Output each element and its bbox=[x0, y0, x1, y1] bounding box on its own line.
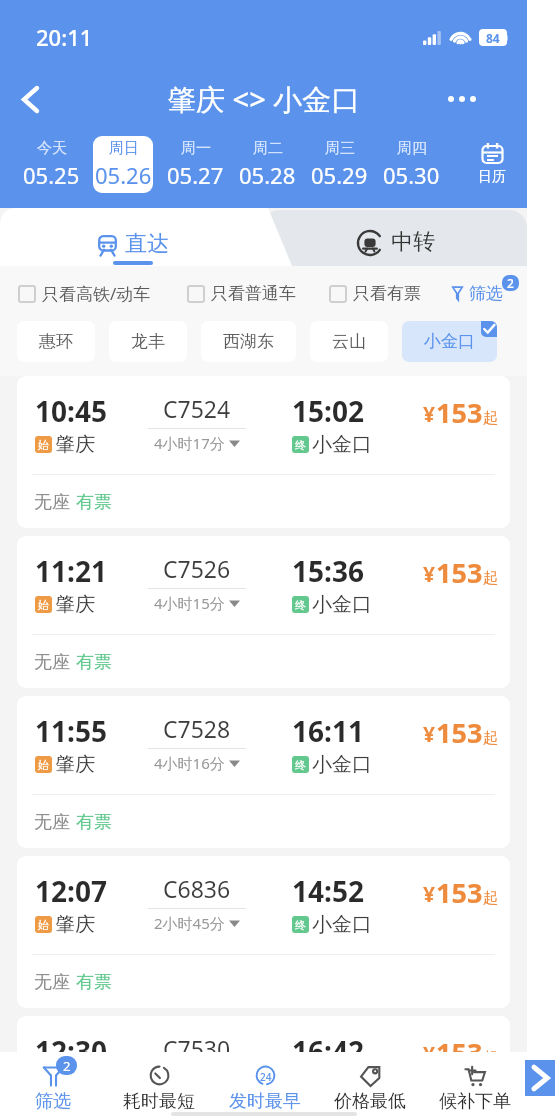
staticText: 153 bbox=[436, 554, 483, 591]
button[interactable]: 周一 bbox=[165, 136, 225, 193]
staticText: ¥ bbox=[423, 720, 436, 749]
staticText: 10:45 bbox=[35, 392, 107, 430]
staticText: 20:11 bbox=[36, 22, 93, 52]
staticText: 有票 bbox=[76, 491, 112, 514]
staticText: 候补下单 bbox=[439, 1090, 511, 1113]
button[interactable]: Back bbox=[0, 72, 60, 126]
staticText: 11:21 bbox=[35, 552, 107, 590]
button[interactable]: 周日 bbox=[93, 136, 153, 193]
staticText: 周一 bbox=[181, 139, 211, 158]
staticText: ¥ bbox=[423, 560, 436, 589]
button[interactable]: More options bbox=[439, 76, 485, 122]
staticText: 始 bbox=[38, 918, 49, 932]
staticText: 84 bbox=[486, 30, 500, 46]
staticText: 日历 bbox=[478, 168, 506, 186]
staticText: 有票 bbox=[76, 811, 112, 834]
staticText: 肇庆 <> 小金口 bbox=[167, 79, 361, 119]
button[interactable]: 耗时最短 bbox=[106, 1052, 212, 1120]
button[interactable]: 今天 bbox=[21, 136, 81, 193]
staticText: 16:42 bbox=[292, 1032, 364, 1070]
staticText: C7526 bbox=[163, 553, 231, 584]
button[interactable]: 小金口 bbox=[402, 321, 497, 362]
button[interactable]: Next page bbox=[525, 1060, 555, 1096]
staticText: 肇庆 bbox=[55, 1072, 95, 1097]
staticText: 153 bbox=[436, 874, 483, 911]
button[interactable]: 12:30 bbox=[17, 1016, 510, 1120]
button[interactable]: 只看高铁/动车 bbox=[18, 282, 151, 305]
button[interactable]: 惠环 bbox=[17, 321, 95, 362]
staticText: 起 bbox=[483, 1049, 498, 1068]
button[interactable]: 中转 bbox=[262, 210, 527, 266]
staticText: 小金口 bbox=[424, 331, 475, 352]
button[interactable]: 价格最低 bbox=[317, 1052, 422, 1120]
button[interactable]: 龙丰 bbox=[109, 321, 187, 362]
staticText: 小金口 bbox=[312, 912, 372, 937]
staticText: 16:11 bbox=[292, 712, 364, 750]
button[interactable]: 候补下单 bbox=[422, 1052, 527, 1120]
button[interactable]: Calendar bbox=[447, 136, 519, 193]
staticText: 小金口 bbox=[312, 1072, 372, 1097]
staticText: 153 bbox=[436, 394, 483, 431]
button[interactable]: 西湖东 bbox=[201, 321, 296, 362]
staticText: 4小时15分 bbox=[154, 593, 225, 613]
staticText: 价格最低 bbox=[334, 1090, 406, 1113]
staticText: 起 bbox=[483, 409, 498, 428]
button[interactable]: 只看普通车 bbox=[187, 283, 296, 304]
staticText: 今天 bbox=[37, 139, 67, 158]
button[interactable]: 24 bbox=[212, 1052, 317, 1120]
button[interactable]: 周二 bbox=[237, 136, 297, 193]
staticText: 2小时45分 bbox=[154, 913, 225, 933]
button[interactable]: 周四 bbox=[381, 136, 441, 193]
staticText: 15:36 bbox=[292, 552, 364, 590]
staticText: ¥ bbox=[423, 400, 436, 429]
button[interactable]: 11:21 bbox=[17, 536, 510, 688]
staticText: 肇庆 bbox=[55, 432, 95, 457]
button[interactable]: 10:45 bbox=[17, 376, 510, 528]
staticText: 4小时12分 bbox=[154, 1073, 225, 1093]
staticText: 05.27 bbox=[167, 160, 224, 190]
staticText: 无座 bbox=[34, 651, 70, 674]
staticText: 周二 bbox=[253, 139, 283, 158]
staticText: 筛选 bbox=[469, 283, 503, 304]
staticText: 153 bbox=[436, 1034, 483, 1071]
staticText: 05.26 bbox=[95, 160, 152, 190]
staticText: 12:30 bbox=[35, 1032, 107, 1070]
button[interactable]: 12:07 bbox=[17, 856, 510, 1008]
staticText: 周日 bbox=[109, 139, 139, 158]
staticText: 有票 bbox=[76, 651, 112, 674]
staticText: 2 bbox=[63, 1057, 71, 1075]
staticText: 无座 bbox=[34, 811, 70, 834]
staticText: 小金口 bbox=[312, 752, 372, 777]
staticText: 小金口 bbox=[312, 592, 372, 617]
staticText: 周四 bbox=[397, 139, 427, 158]
staticText: 终 bbox=[295, 598, 306, 612]
staticText: 始 bbox=[38, 438, 49, 452]
staticText: 无座 bbox=[34, 491, 70, 514]
staticText: 周三 bbox=[325, 139, 355, 158]
staticText: 无座 bbox=[34, 971, 70, 994]
staticText: 小金口 bbox=[312, 432, 372, 457]
button[interactable]: 筛选 bbox=[452, 283, 503, 304]
staticText: 中转 bbox=[391, 228, 435, 256]
button[interactable]: 2 bbox=[0, 1052, 106, 1120]
staticText: 肇庆 bbox=[55, 752, 95, 777]
staticText: 11:55 bbox=[35, 712, 107, 750]
staticText: 起 bbox=[483, 729, 498, 748]
staticText: 西湖东 bbox=[223, 331, 274, 352]
staticText: 05.30 bbox=[383, 160, 440, 190]
staticText: 终 bbox=[295, 758, 306, 772]
staticText: ¥ bbox=[423, 1040, 436, 1069]
button[interactable]: 只看有票 bbox=[329, 283, 421, 304]
staticText: 05.29 bbox=[311, 160, 368, 190]
button[interactable]: 11:55 bbox=[17, 696, 510, 848]
button[interactable]: 周三 bbox=[309, 136, 369, 193]
staticText: C7530 bbox=[163, 1033, 231, 1064]
staticText: 发时最早 bbox=[229, 1090, 301, 1113]
staticText: 耗时最短 bbox=[123, 1090, 195, 1113]
staticText: 05.25 bbox=[23, 160, 80, 190]
staticText: 24 bbox=[260, 1070, 272, 1084]
button[interactable]: 直达 bbox=[0, 208, 292, 266]
button[interactable]: 云山 bbox=[310, 321, 388, 362]
